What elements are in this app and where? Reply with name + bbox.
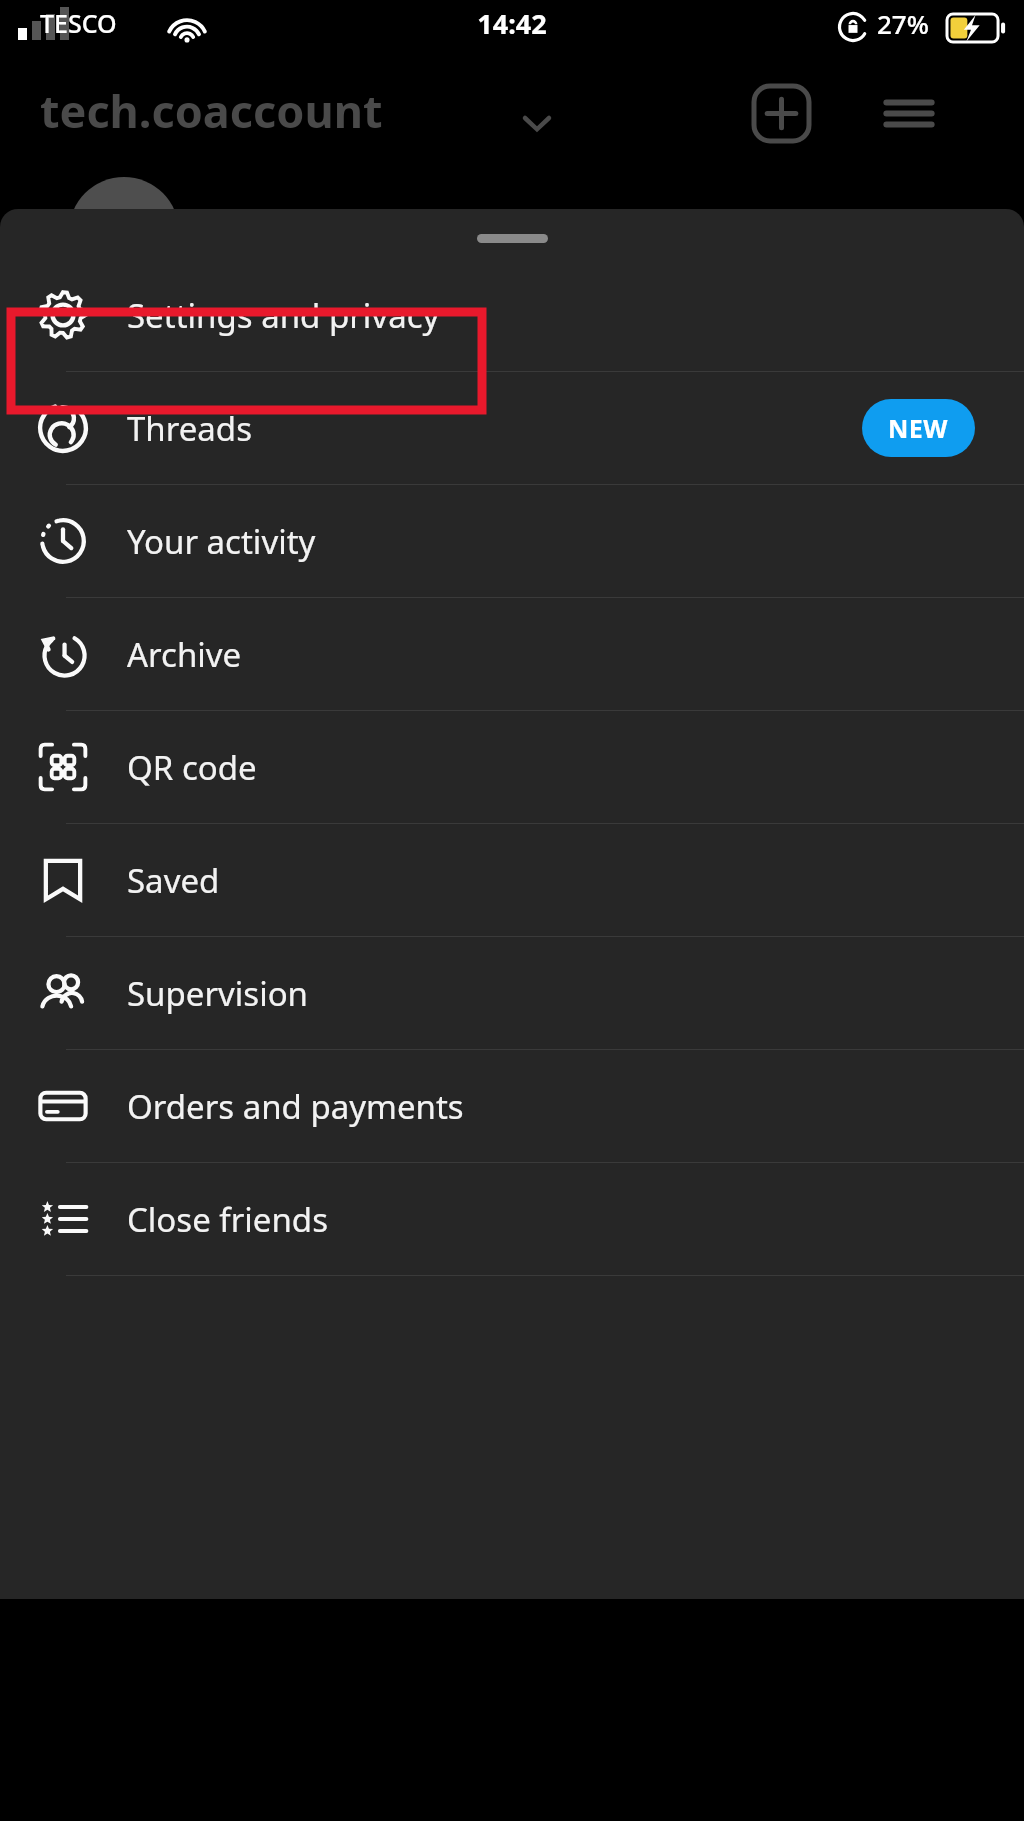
button[interactable]: Archive [0,598,1024,710]
staticText: NEW [888,411,949,445]
button[interactable]: Menu [880,86,938,141]
button[interactable]: Your activity [0,485,1024,597]
staticText: Threads [127,406,252,451]
staticText: 27% [877,6,929,41]
staticText: Orders and payments [127,1084,464,1129]
button[interactable]: Create [754,86,809,141]
button[interactable]: Supervision [0,937,1024,1049]
staticText: Archive [127,632,242,677]
button[interactable]: QR code [0,711,1024,823]
button[interactable]: NEW [862,399,975,457]
staticText: Settings and privacy [127,293,440,338]
staticText: Supervision [127,971,309,1016]
button[interactable]: Threads [0,372,1024,484]
staticText: Close friends [127,1197,328,1242]
staticText: TESCO [40,6,117,40]
button[interactable]: Close friends [0,1163,1024,1275]
staticText: QR code [127,745,257,790]
button[interactable]: Settings and privacy [0,259,1024,371]
staticText: 14:42 [0,5,1024,42]
staticText: Saved [127,858,220,903]
button[interactable]: Saved [0,824,1024,936]
button[interactable]: Orders and payments [0,1050,1024,1162]
staticText: tech.coaccount [40,80,383,141]
staticText: Your activity [127,519,316,564]
